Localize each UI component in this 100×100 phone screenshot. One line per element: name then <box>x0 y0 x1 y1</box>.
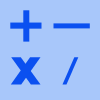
button[interactable]: Subtract <box>50 0 100 50</box>
button[interactable]: Add <box>0 0 50 50</box>
button[interactable]: Divide <box>50 50 100 100</box>
button[interactable]: Multiply <box>0 50 50 100</box>
